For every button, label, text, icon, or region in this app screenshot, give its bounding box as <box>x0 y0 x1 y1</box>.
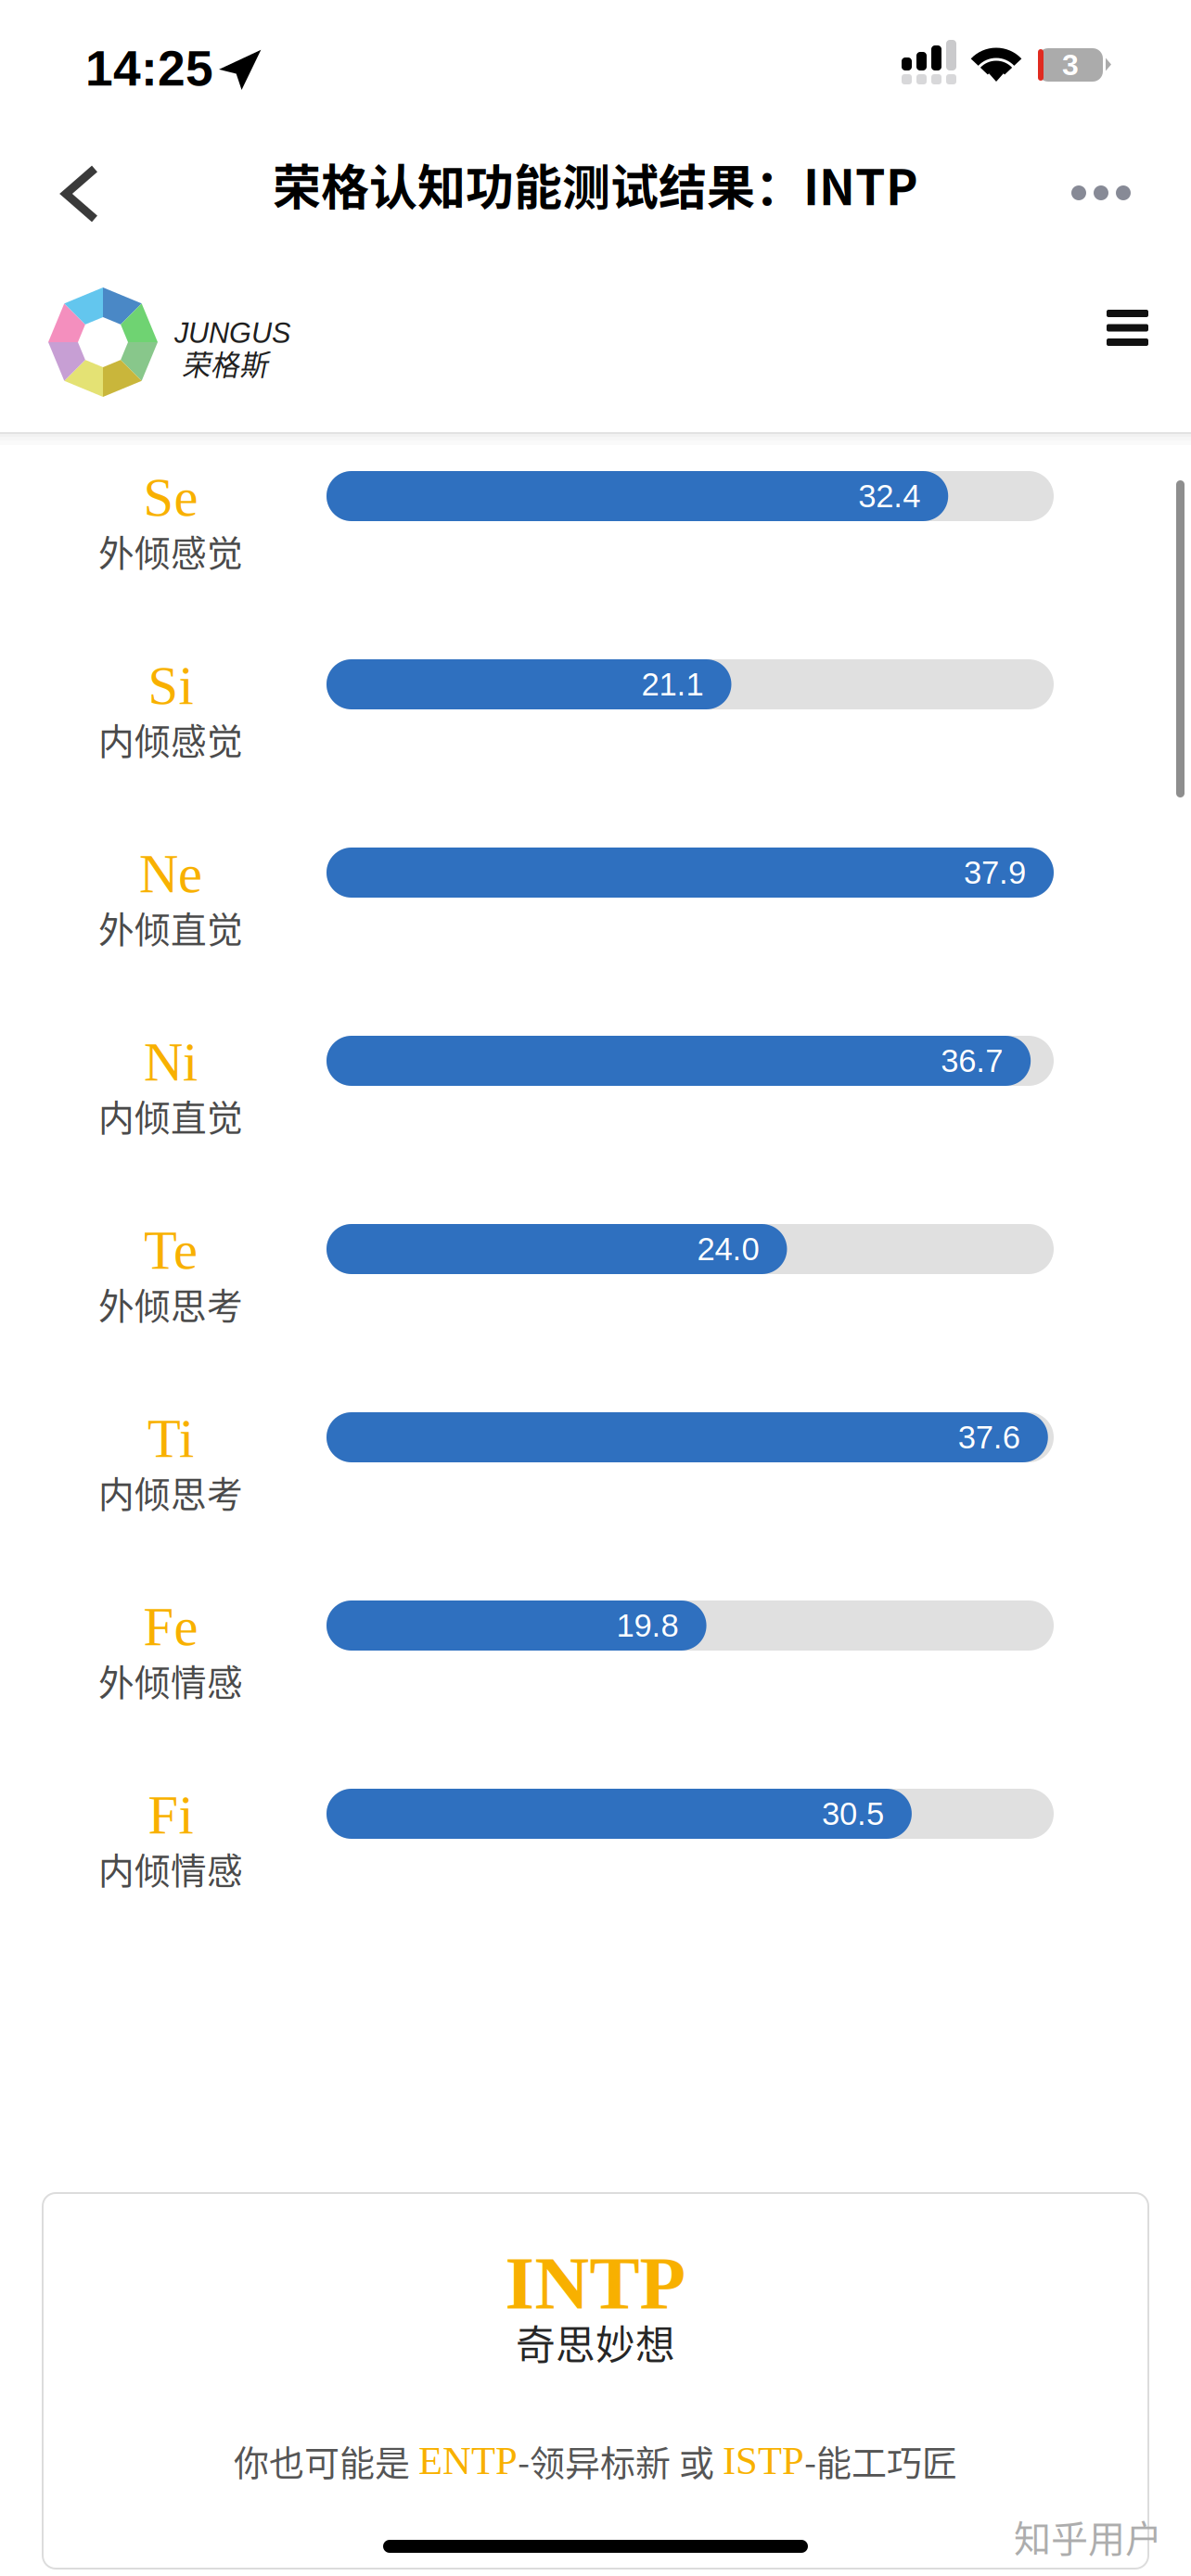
staticText: 奇思妙想 <box>516 2314 675 2371</box>
staticText: 内倾感觉 <box>98 713 243 765</box>
staticText: 荣格斯 <box>182 342 268 383</box>
staticText: 外倾思考 <box>98 1278 243 1330</box>
staticText: 36.7 <box>941 1043 1003 1079</box>
staticText: Ti <box>147 1409 194 1469</box>
staticText: 外倾感觉 <box>98 525 243 577</box>
staticText: -能工巧匠 <box>804 2435 957 2486</box>
staticText: JUNGUS <box>174 317 290 349</box>
button[interactable]: JUNGUS 荣格斯 home <box>48 280 289 401</box>
staticText: Fe <box>143 1597 198 1657</box>
staticText: INTP <box>505 2241 686 2325</box>
staticText: Te <box>144 1220 198 1281</box>
staticText: 30.5 <box>822 1796 884 1832</box>
staticText: 37.9 <box>964 855 1026 890</box>
staticText: Si <box>148 656 193 716</box>
staticText: 32.4 <box>858 478 920 514</box>
staticText: 19.8 <box>616 1608 679 1643</box>
staticText: 知乎用户 <box>1014 2509 1162 2563</box>
staticText: 14:25 <box>85 41 213 96</box>
staticText: Ni <box>144 1032 198 1092</box>
staticText: 21.1 <box>641 666 704 702</box>
button[interactable]: Menu <box>1079 282 1176 374</box>
staticText: Fi <box>148 1785 193 1845</box>
staticText: ENTP <box>418 2439 518 2483</box>
staticText: 3 <box>1062 48 1079 82</box>
button[interactable]: More options <box>1044 150 1159 236</box>
staticText: 外倾情感 <box>98 1654 243 1706</box>
staticText: -领异标新 或 <box>518 2435 723 2486</box>
staticText: 内倾直觉 <box>98 1090 243 1141</box>
staticText: 24.0 <box>697 1231 759 1267</box>
staticText: 荣格认知功能测试结果：INTP <box>273 149 918 219</box>
staticText: Se <box>143 467 198 528</box>
button[interactable]: Back <box>28 139 133 249</box>
staticText: 你也可能是 <box>234 2435 418 2486</box>
staticText: 内倾思考 <box>98 1466 243 1518</box>
staticText: Ne <box>139 844 202 904</box>
staticText: 外倾直觉 <box>98 901 243 953</box>
staticText: 37.6 <box>958 1419 1020 1455</box>
staticText: 内倾情感 <box>98 1843 243 1894</box>
staticText: ISTP <box>723 2439 804 2483</box>
